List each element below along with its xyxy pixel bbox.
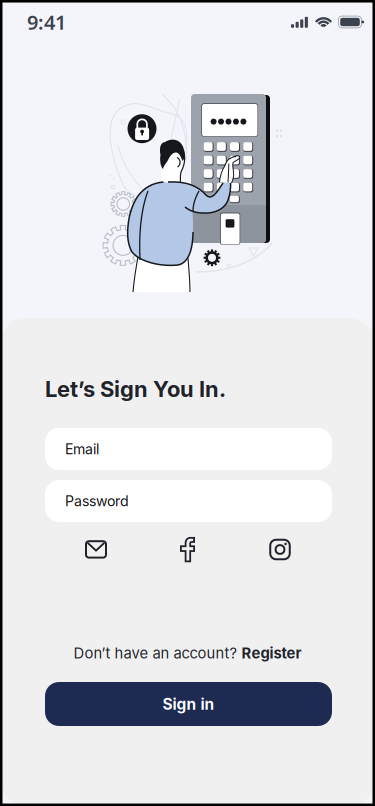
staticText: Let’s Sign You In. (45, 376, 226, 402)
staticText: Email (65, 440, 99, 457)
button[interactable]: Password (45, 480, 332, 522)
button[interactable]: Sign in (45, 682, 332, 726)
staticText: Register (241, 644, 301, 662)
button[interactable]: Sign in with Facebook (159, 529, 215, 569)
button[interactable]: Email (45, 428, 332, 470)
staticText: 9:41 (27, 9, 66, 35)
staticText: Don’t have an account? (73, 644, 241, 662)
button[interactable]: Register (241, 644, 301, 662)
staticText: Password (65, 492, 129, 509)
button[interactable]: Sign in with Email (68, 529, 124, 569)
staticText: Sign in (162, 695, 214, 713)
button[interactable]: Sign in with Instagram (252, 529, 308, 569)
